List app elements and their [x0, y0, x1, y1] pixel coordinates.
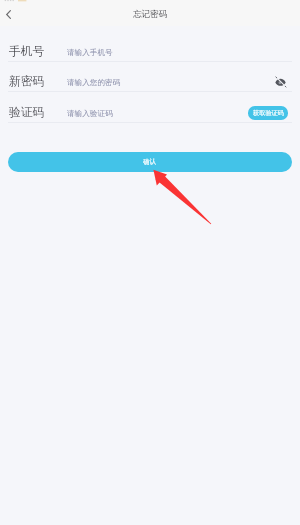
staticText: 验证码 [9, 105, 45, 120]
staticText: 确认 [143, 158, 157, 166]
staticText: 请输入您的密码 [67, 78, 121, 88]
staticText: 获取验证码 [253, 109, 284, 117]
button[interactable]: 确认 [8, 152, 292, 172]
staticText: 忘记密码 [133, 9, 168, 20]
button[interactable]: Back [0, 3, 17, 25]
staticText: 请输入验证码 [67, 109, 113, 119]
button[interactable]: 验证码 [0, 92, 300, 123]
staticText: 新密码 [9, 74, 45, 89]
button[interactable]: Show password [272, 73, 289, 90]
staticText: 手机号 [9, 44, 45, 59]
button[interactable]: 获取验证码 [248, 106, 288, 120]
staticText: 请输入手机号 [67, 48, 113, 58]
button[interactable]: 手机号 [0, 31, 300, 62]
button[interactable]: 新密码 [0, 61, 300, 92]
